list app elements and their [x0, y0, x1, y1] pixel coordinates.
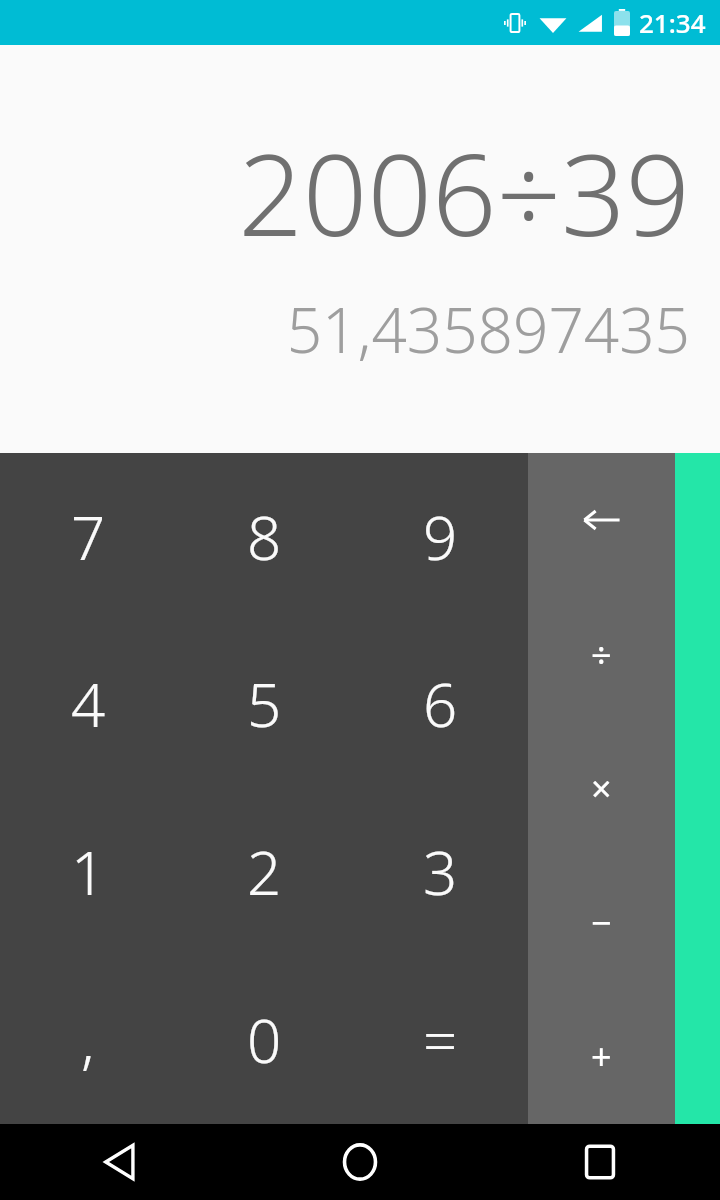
button[interactable]: 3 — [352, 788, 528, 956]
button[interactable]: 8 — [176, 453, 352, 620]
staticText: 9 — [423, 496, 458, 578]
staticText: 7 — [71, 496, 106, 578]
staticText: ÷ — [591, 630, 612, 679]
staticText: 21:34 — [639, 5, 706, 40]
button[interactable]: 6 — [352, 620, 528, 788]
staticText: × — [591, 764, 612, 813]
button[interactable]: = — [352, 956, 528, 1124]
button[interactable]: Recents — [480, 1124, 720, 1200]
button[interactable]: Divide — [528, 587, 675, 721]
button[interactable]: 9 — [352, 453, 528, 620]
staticText: = — [423, 999, 458, 1081]
button[interactable]: Back — [0, 1124, 240, 1200]
button[interactable]: , — [0, 956, 176, 1124]
staticText: + — [591, 1032, 612, 1081]
staticText: 2 — [247, 831, 282, 913]
staticText: 1 — [71, 831, 106, 913]
staticText: 2006÷39 — [238, 115, 690, 269]
staticText: 4 — [71, 663, 106, 745]
button[interactable]: Add — [528, 989, 675, 1123]
staticText: 5 — [247, 663, 282, 745]
button[interactable]: 2 — [176, 788, 352, 956]
button[interactable]: Backspace — [528, 453, 675, 587]
button[interactable]: 7 — [0, 453, 176, 620]
button[interactable]: 1 — [0, 788, 176, 956]
button[interactable]: Home — [240, 1124, 480, 1200]
staticText: 51,435897435 — [286, 287, 690, 371]
staticText: 0 — [247, 999, 282, 1081]
button[interactable]: Multiply — [528, 721, 675, 855]
button[interactable]: 5 — [176, 620, 352, 788]
button[interactable]: 0 — [176, 956, 352, 1124]
staticText: , — [81, 999, 95, 1081]
staticText: 3 — [423, 831, 458, 913]
staticText: 6 — [423, 663, 458, 745]
staticText: − — [591, 898, 612, 947]
button[interactable]: Subtract — [528, 855, 675, 989]
staticText: 8 — [247, 496, 282, 578]
button[interactable]: 4 — [0, 620, 176, 788]
